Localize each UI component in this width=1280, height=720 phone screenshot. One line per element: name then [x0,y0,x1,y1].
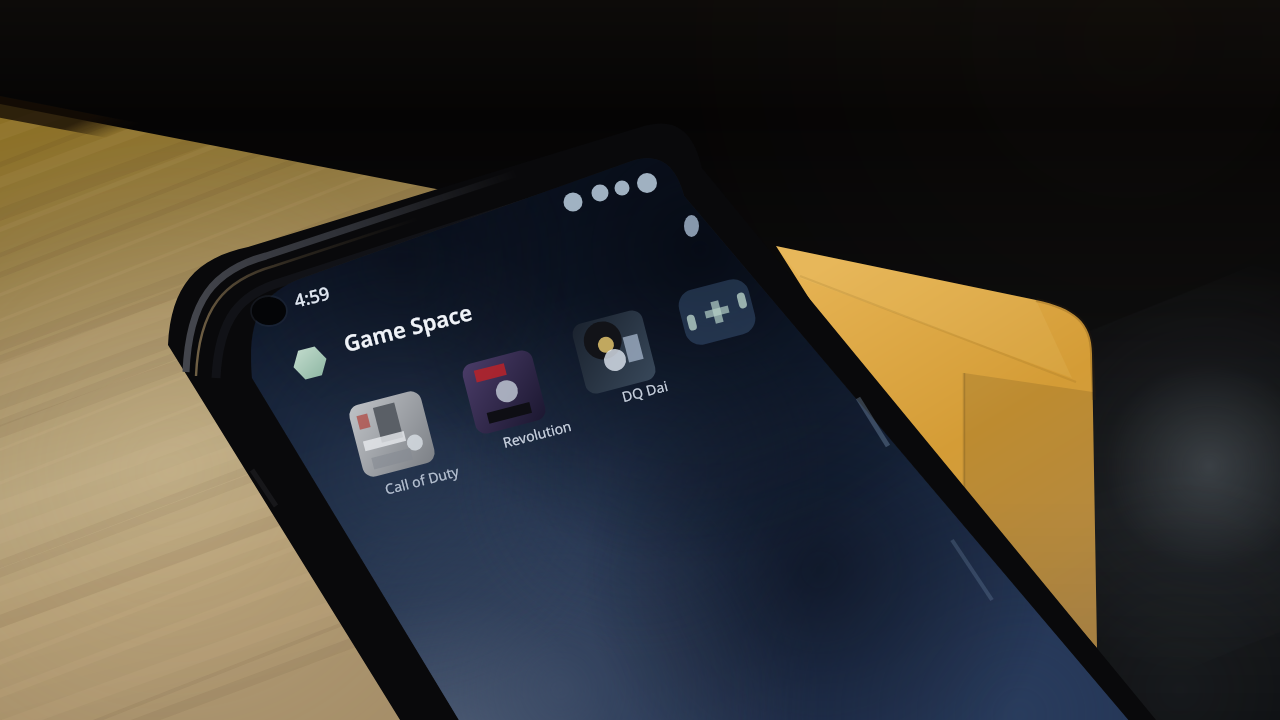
button[interactable]: Game tools [680,280,758,344]
button[interactable]: Open DQ Dai [573,318,655,398]
button[interactable]: Game Space [292,344,332,384]
button[interactable]: Open Call of Duty [350,400,434,490]
button[interactable]: Open Revolution [464,360,546,445]
